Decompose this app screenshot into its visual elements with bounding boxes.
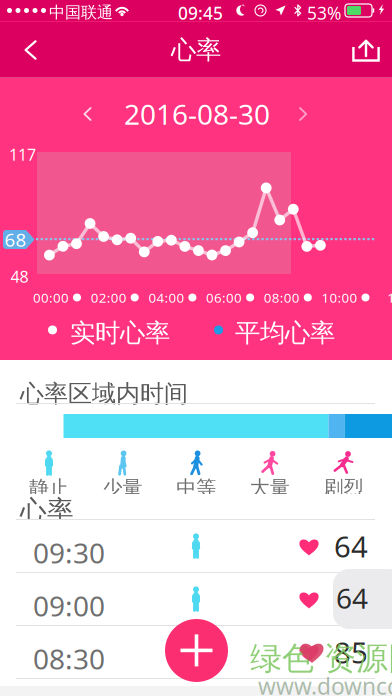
staticText: 64 — [334, 526, 368, 565]
button[interactable]: Previous day — [66, 94, 110, 134]
staticText: 12: — [387, 289, 392, 306]
staticText: 资源网 — [324, 639, 392, 678]
staticText: 85 — [334, 632, 368, 671]
staticText: 实时心率 — [70, 317, 170, 348]
staticText: 中国联通 — [49, 2, 113, 22]
button[interactable]: 09:00 — [0, 573, 392, 626]
staticText: 00:00 — [33, 289, 69, 306]
staticText: 心率 — [20, 494, 74, 527]
staticText: 09:30 — [33, 534, 105, 571]
staticText: 48 — [10, 266, 28, 287]
staticText: 静止 — [29, 476, 69, 500]
staticText: 53% — [307, 1, 341, 24]
staticText: 中等 — [176, 476, 216, 500]
staticText: 06:00 — [206, 289, 242, 306]
staticText: 心率 — [171, 34, 221, 65]
staticText: 09:00 — [33, 587, 105, 624]
staticText: 剧烈 — [323, 476, 363, 500]
staticText: 64 — [334, 579, 368, 618]
staticText: 68 — [4, 227, 26, 252]
staticText: 10:00 — [321, 289, 357, 306]
staticText: 2016-08-30 — [124, 95, 270, 133]
staticText: 04:00 — [148, 289, 184, 306]
button[interactable]: Next day — [281, 94, 325, 134]
staticText: 大量 — [250, 476, 290, 500]
staticText: 117 — [9, 144, 36, 165]
staticText: 绿色 — [250, 639, 314, 678]
staticText: 心率区域内时间 — [20, 379, 188, 408]
button[interactable]: Share — [340, 22, 392, 78]
staticText: 08:30 — [33, 640, 105, 677]
staticText: 02:00 — [91, 289, 127, 306]
button[interactable]: 09:30 — [0, 520, 392, 573]
staticText: 少量 — [103, 476, 143, 500]
button[interactable]: Back — [0, 22, 52, 78]
staticText: 平均心率 — [235, 317, 335, 348]
staticText: 08:00 — [264, 289, 300, 306]
staticText: 64 — [336, 579, 368, 617]
staticText: 09:45 — [178, 1, 223, 24]
staticText: www.downcc.com — [258, 671, 392, 696]
button[interactable]: Add reading — [165, 619, 228, 682]
button[interactable]: 08:30 — [0, 626, 392, 679]
